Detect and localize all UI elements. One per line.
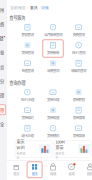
- button[interactable]: 宽带账单: [40, 39, 66, 57]
- button[interactable]: 宽带报停: [66, 122, 91, 140]
- button[interactable]: 重庆WiFi: [15, 140, 52, 157]
- staticText: 宽带报障: [73, 115, 85, 120]
- button[interactable]: 办理: [0, 88, 7, 103]
- staticText: 宽带续约: [21, 115, 33, 120]
- button[interactable]: 常用: [0, 2, 7, 17]
- button[interactable]: 我的: [81, 161, 92, 178]
- button[interactable]: 套餐: [0, 31, 7, 45]
- button[interactable]: 语音: [0, 60, 7, 74]
- button[interactable]: 宽带套餐: [66, 86, 91, 104]
- button[interactable]: 首页: [7, 161, 25, 178]
- button[interactable]: 宽带查询: [15, 39, 40, 57]
- button[interactable]: 停复机查询: [66, 57, 91, 75]
- button[interactable]: WiFi查询: [66, 39, 91, 57]
- staticText: 积分: [0, 78, 4, 84]
- staticText: 副卡办理: [21, 133, 33, 138]
- staticText: 免费体验: [16, 151, 25, 159]
- staticText: WiFi查询: [72, 50, 85, 55]
- staticText: 话费查询: [47, 68, 59, 73]
- button[interactable]: 副卡办理: [15, 122, 40, 140]
- staticText: 宽带办理: [47, 97, 59, 102]
- button[interactable]: 宽带报障: [66, 104, 91, 122]
- staticText: 停复机查询: [71, 68, 86, 73]
- button[interactable]: 100M宽带: [54, 140, 91, 157]
- staticText: 商城: [50, 171, 56, 176]
- button[interactable]: 商城: [44, 161, 62, 178]
- staticText: 100M宽带: [55, 139, 64, 150]
- button[interactable]: 发现: [62, 161, 81, 178]
- button[interactable]: 当月账单查询: [40, 21, 66, 39]
- button[interactable]: WiFi办理: [15, 86, 40, 104]
- button[interactable]: 话费: [0, 17, 7, 31]
- staticText: 服务: [32, 171, 38, 176]
- staticText: 充值查询: [21, 68, 33, 73]
- staticText: 宽带提速: [47, 115, 59, 120]
- staticText: 宽带移机: [47, 133, 59, 138]
- button[interactable]: 宽带办理: [40, 86, 66, 104]
- staticText: 宽带: [0, 107, 4, 113]
- staticText: 首页: [13, 171, 19, 176]
- button[interactable]: 流量: [0, 45, 7, 60]
- staticText: 话费: [0, 21, 4, 27]
- staticText: 当月账单查询: [44, 32, 62, 37]
- button[interactable]: 宽带移机: [40, 122, 66, 140]
- staticText: 查号服务: [9, 14, 25, 21]
- staticText: 宽带报停: [73, 133, 85, 138]
- staticText: 流量: [0, 49, 4, 56]
- staticText: 重庆WiFi: [16, 139, 24, 150]
- button[interactable]: 充值查询: [15, 57, 40, 75]
- button[interactable]: 资费查询: [66, 21, 91, 39]
- staticText: 限时优惠: [55, 151, 64, 159]
- staticText: 当前地区：: [10, 5, 30, 10]
- staticText: 发现: [68, 171, 74, 176]
- staticText: WiFi办理: [21, 97, 34, 102]
- staticText: 资费查询: [73, 32, 85, 37]
- staticText: 套餐查询: [21, 32, 33, 37]
- button[interactable]: 宽带提速: [40, 104, 66, 122]
- staticText: 办理: [0, 92, 4, 99]
- staticText: 宽带套餐: [73, 97, 85, 102]
- staticText: 套餐: [0, 35, 3, 41]
- button[interactable]: 宽带: [0, 103, 7, 117]
- staticText: 宽带查询: [21, 50, 33, 55]
- button[interactable]: 话费查询: [40, 57, 66, 75]
- staticText: 切换: [38, 5, 49, 10]
- staticText: 常用: [0, 7, 4, 13]
- staticText: 安全: [0, 121, 4, 127]
- button[interactable]: 套餐查询: [15, 21, 40, 39]
- button[interactable]: 服务: [25, 161, 44, 178]
- staticText: 查询办理: [9, 79, 25, 86]
- staticText: 我的: [87, 171, 92, 176]
- button[interactable]: 安全: [0, 117, 7, 131]
- staticText: 语音: [0, 64, 4, 70]
- button[interactable]: 积分: [0, 74, 7, 88]
- staticText: 重庆: [30, 5, 38, 10]
- button[interactable]: 宽带续约: [15, 104, 40, 122]
- staticText: 宽带账单: [47, 50, 59, 55]
